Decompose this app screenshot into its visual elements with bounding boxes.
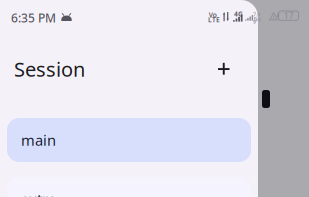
staticText: B/s	[253, 16, 261, 23]
staticText: Vo	[209, 10, 217, 19]
staticText: 7.49	[253, 11, 260, 25]
staticText: Session	[14, 56, 85, 82]
staticText: main	[21, 130, 56, 150]
staticText: 17	[284, 9, 294, 22]
staticText: LTE	[208, 15, 220, 24]
button[interactable]: main	[0, 118, 258, 162]
staticText: 6:35 PM	[11, 10, 56, 26]
staticText: 4G	[234, 9, 243, 18]
button[interactable]: New session	[204, 49, 244, 89]
button[interactable]: extra	[0, 177, 258, 197]
staticText: extra	[21, 189, 56, 197]
